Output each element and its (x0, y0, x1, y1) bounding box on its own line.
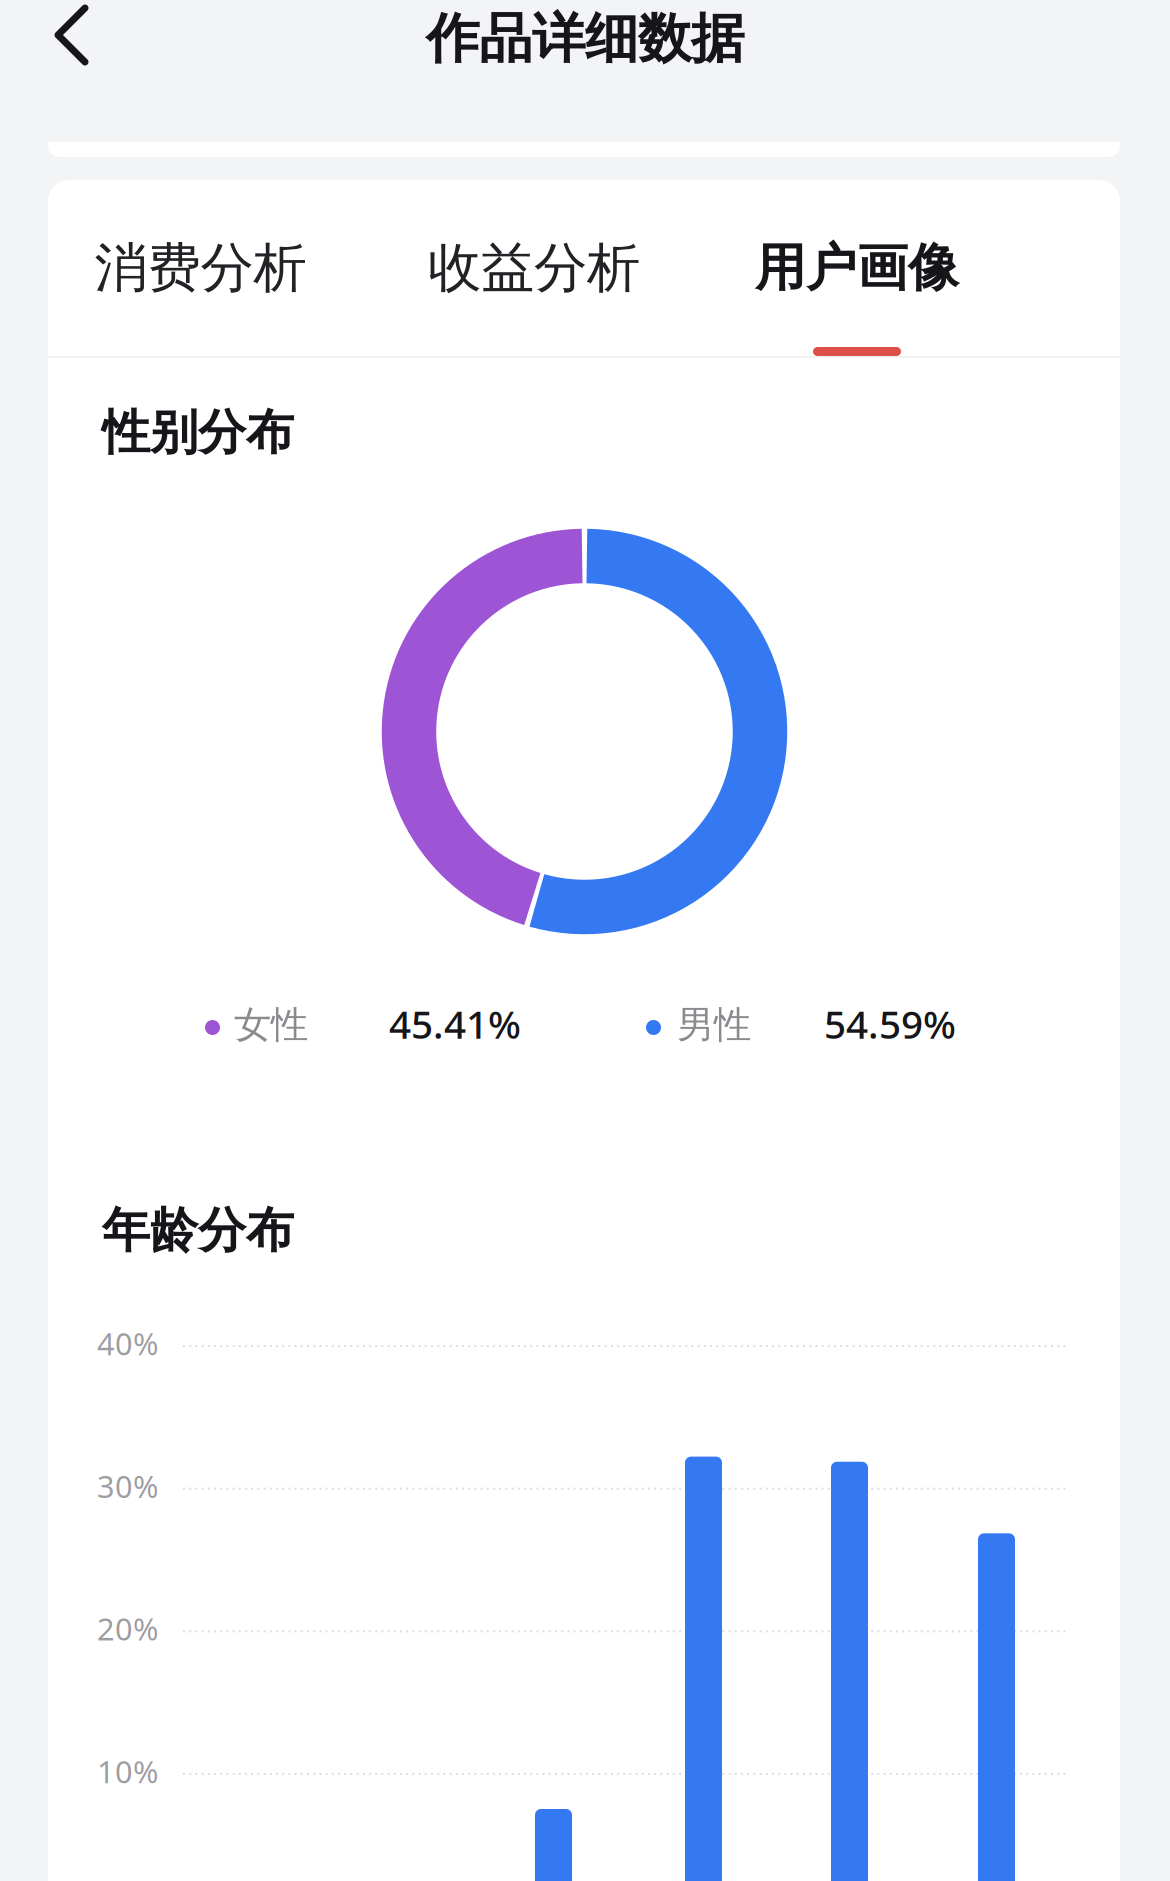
staticText: 用户画像 (755, 237, 959, 299)
staticText: 30% (97, 1466, 158, 1506)
staticText: 10% (97, 1751, 158, 1792)
button[interactable]: 用户画像 (682, 180, 1032, 356)
staticText: 女性 (234, 1002, 308, 1048)
staticText: 男性 (677, 1002, 751, 1048)
button[interactable]: 收益分析 (369, 180, 699, 356)
button[interactable]: 消费分析 (48, 180, 353, 356)
staticText: 40% (97, 1323, 158, 1364)
staticText: 消费分析 (94, 235, 306, 301)
staticText: 收益分析 (428, 235, 640, 301)
staticText: 作品详细数据 (426, 6, 744, 71)
staticText: 45.41% (389, 998, 521, 1049)
staticText: 性别分布 (102, 403, 294, 462)
staticText: 20% (97, 1608, 158, 1649)
staticText: 54.59% (824, 998, 956, 1049)
staticText: 年龄分布 (102, 1201, 294, 1260)
button[interactable]: Back (36, 0, 107, 80)
